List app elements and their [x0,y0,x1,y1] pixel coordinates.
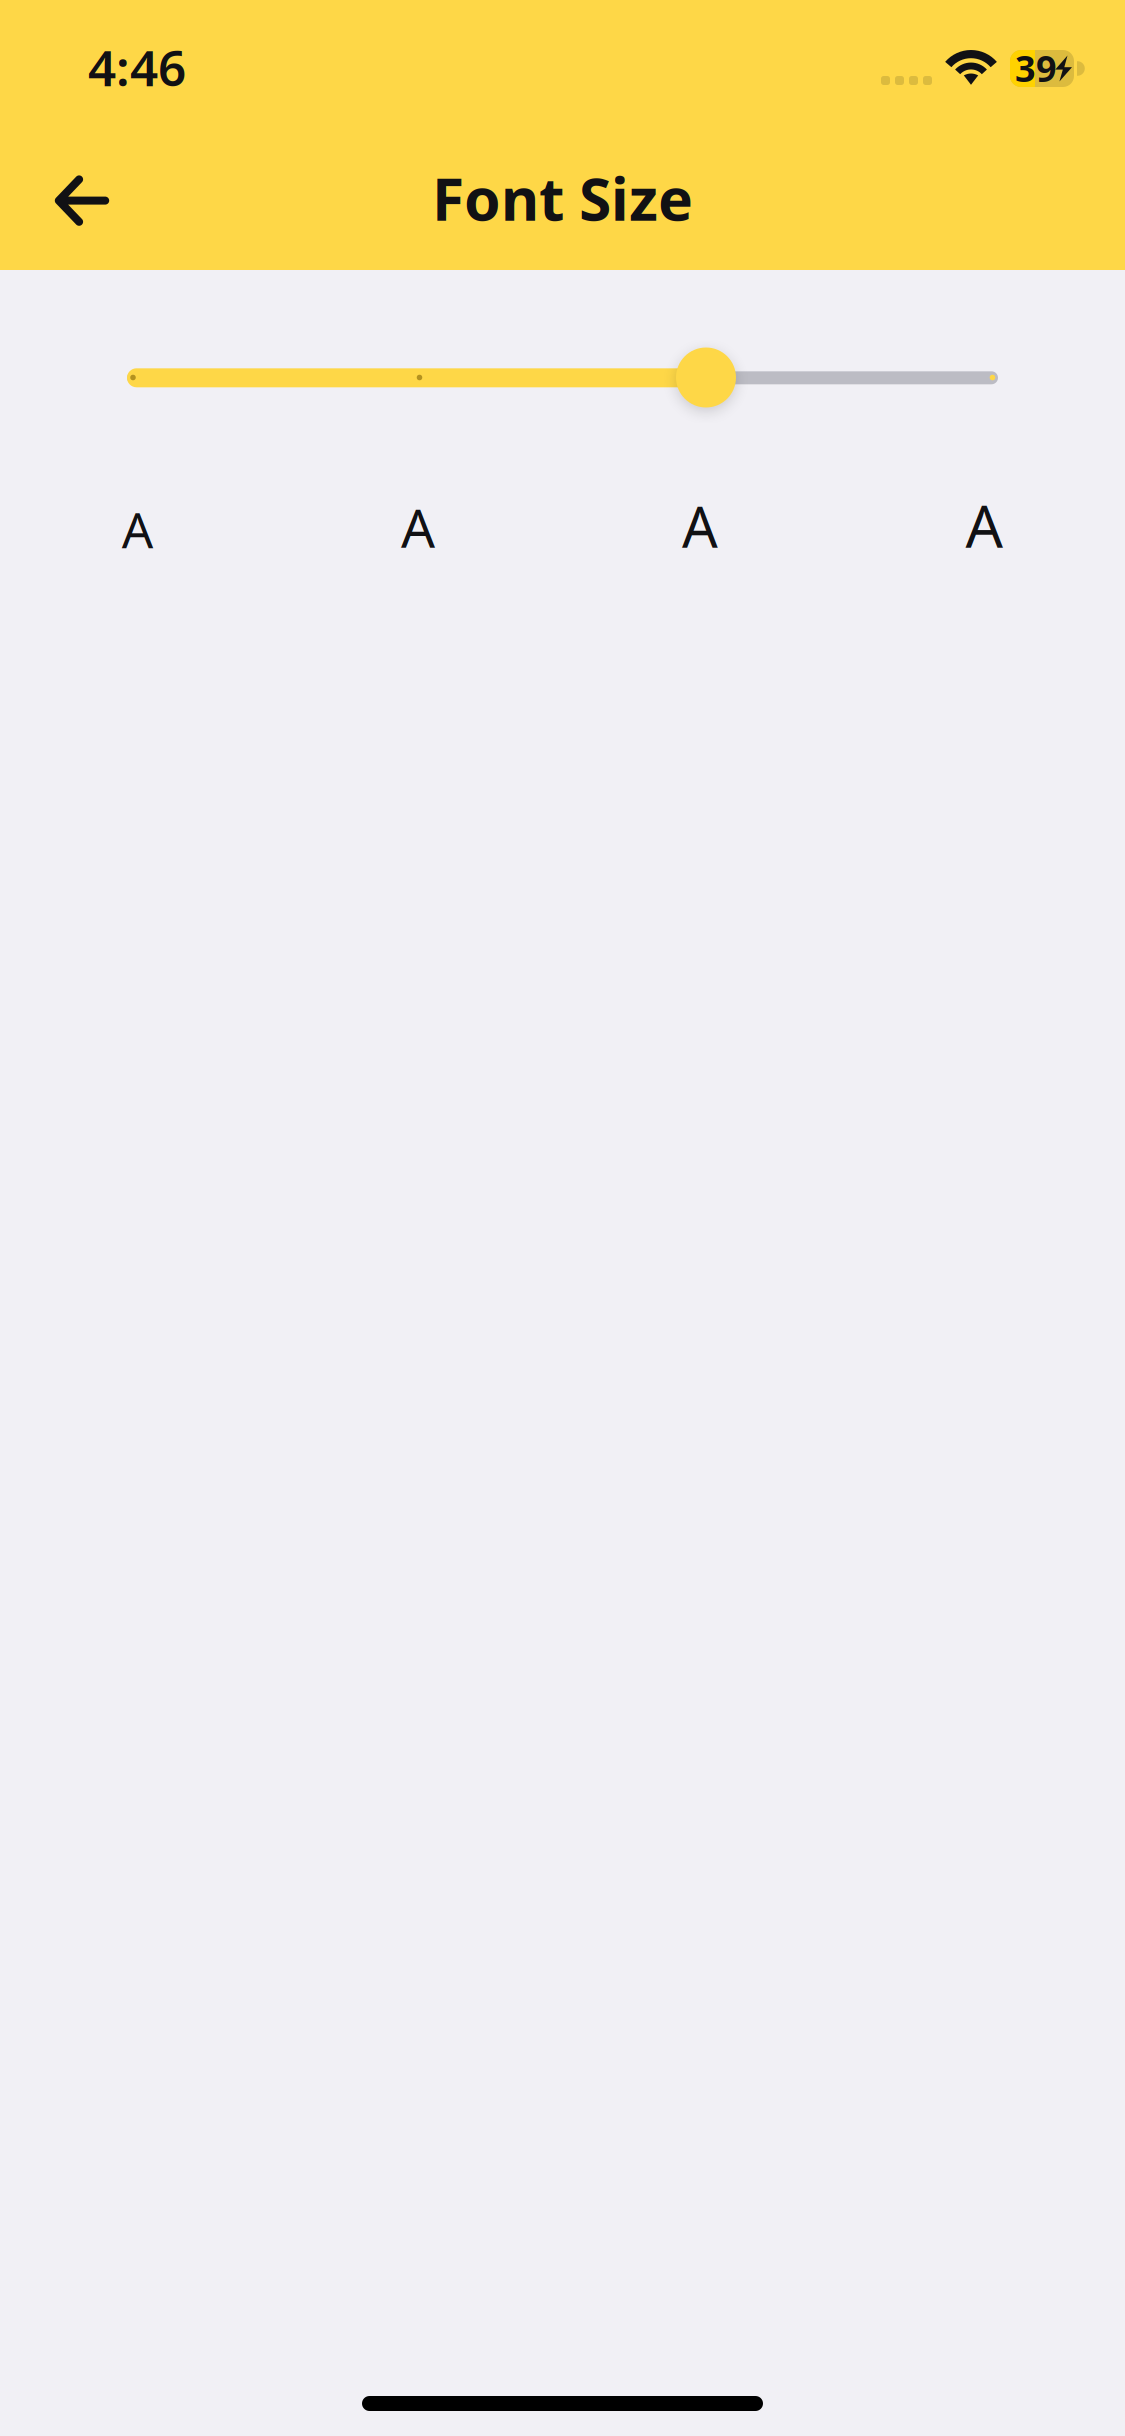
button[interactable]: A [358,472,478,582]
button[interactable]: Font size [0,318,1125,438]
button[interactable]: A [640,471,760,581]
staticText: A [401,492,435,562]
staticText: 39 [1015,44,1057,92]
staticText: 4:46 [88,34,186,100]
staticText: A [122,496,154,562]
staticText: Font Size [432,159,693,237]
button[interactable]: Back [34,134,144,244]
button[interactable]: A [924,470,1044,580]
button[interactable]: A [78,474,198,584]
staticText: A [682,489,718,563]
staticText: A [965,486,1002,564]
